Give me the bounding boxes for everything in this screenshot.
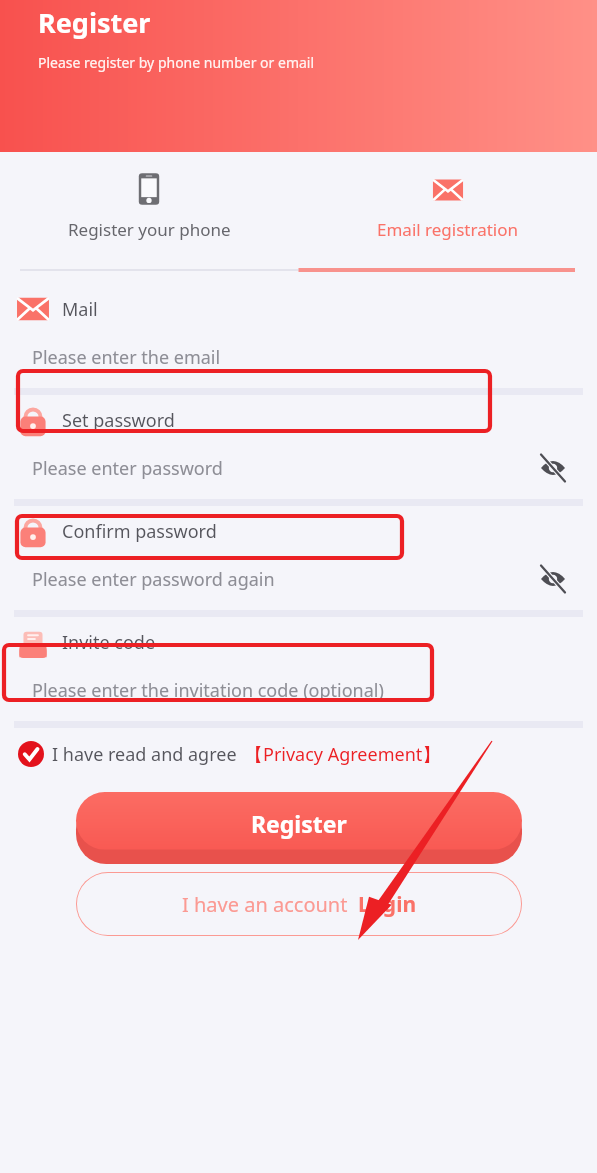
staticText: 【Privacy Agreement】 [245,742,441,767]
staticText: Confirm password [62,519,217,544]
staticText: Please register by phone number or email [38,53,315,72]
staticText: Please enter the invitation code (option… [32,678,573,703]
button[interactable]: Please enter password [32,437,573,499]
button[interactable]: Please enter the email [32,326,573,388]
staticText: Set password [62,408,175,433]
staticText: Register [251,808,347,839]
button[interactable]: Register [76,792,522,864]
button[interactable]: Email registration [298,152,597,274]
staticText: Register your phone [68,218,231,241]
button[interactable]: Show password [533,448,573,488]
button[interactable]: Register your phone [0,152,298,274]
staticText: I have read and agree [52,742,237,767]
staticText: Please enter password [32,456,533,481]
staticText: Please enter the email [32,345,573,370]
button[interactable]: I have read and agree [18,728,597,780]
staticText: Register [38,4,151,41]
staticText: Mail [62,297,98,322]
button[interactable]: Please enter password again [32,548,573,610]
staticText: Invite code [62,630,156,655]
staticText: Please enter password again [32,567,533,592]
staticText: Login [358,890,417,919]
button[interactable]: I have an account [76,872,522,936]
button[interactable]: Please enter the invitation code (option… [32,659,573,721]
button[interactable]: Show password [533,559,573,599]
staticText: Email registration [377,218,518,241]
staticText: I have an account [182,891,348,918]
